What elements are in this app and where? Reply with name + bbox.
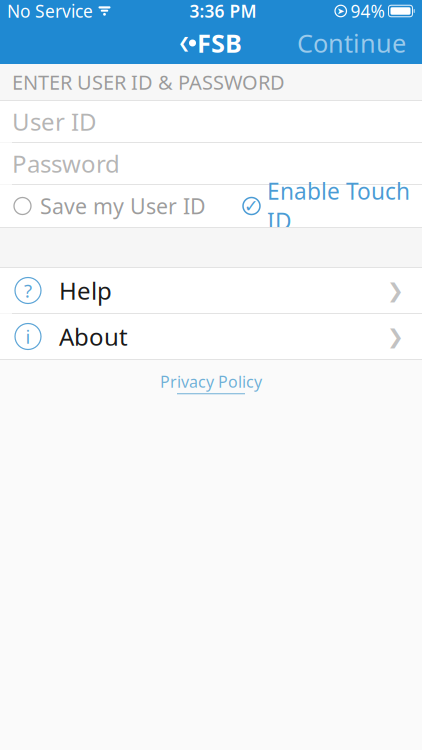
staticText: i bbox=[25, 324, 30, 349]
staticText: Continue bbox=[297, 26, 406, 60]
staticText: ❯ bbox=[387, 325, 404, 348]
button[interactable]: i bbox=[0, 314, 422, 359]
staticText: About bbox=[59, 321, 128, 352]
staticText: Help bbox=[59, 275, 112, 306]
button[interactable]: Save my User ID bbox=[0, 184, 206, 228]
staticText: User ID bbox=[12, 106, 97, 137]
staticText: ? bbox=[24, 278, 32, 303]
staticText: Save my User ID bbox=[40, 192, 206, 220]
staticText: Password bbox=[12, 148, 120, 179]
staticText: Enable Touch ID bbox=[267, 176, 410, 236]
staticText: ❯ bbox=[387, 279, 404, 302]
staticText: FSB bbox=[197, 26, 242, 60]
button[interactable]: ✓ bbox=[243, 168, 422, 244]
button[interactable]: Privacy Policy bbox=[148, 360, 274, 402]
staticText: Privacy Policy bbox=[160, 371, 262, 392]
button[interactable]: Continue bbox=[287, 20, 416, 66]
staticText: No Service bbox=[7, 0, 93, 22]
staticText: ENTER USER ID & PASSWORD bbox=[12, 69, 285, 95]
staticText: 3:36 PM bbox=[189, 0, 256, 22]
staticText: 94% bbox=[350, 0, 384, 22]
button[interactable]: ? bbox=[0, 268, 422, 313]
staticText: ❮ bbox=[178, 35, 190, 51]
staticText: ➤ bbox=[337, 6, 345, 16]
staticText: ✓ bbox=[244, 196, 259, 216]
